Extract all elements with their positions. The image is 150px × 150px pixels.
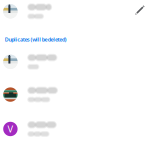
staticText: Duplicates (will be deleted) xyxy=(5,36,67,43)
button[interactable] xyxy=(0,0,133,23)
staticText: V xyxy=(7,123,13,135)
button[interactable]: V xyxy=(0,102,150,137)
button[interactable]: Edit xyxy=(133,4,150,18)
button[interactable] xyxy=(0,43,150,70)
button[interactable] xyxy=(0,70,150,102)
